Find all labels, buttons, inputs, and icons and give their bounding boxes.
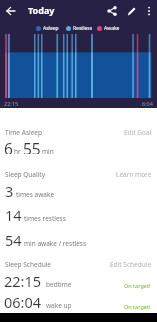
staticText: 54 [5,230,22,246]
button[interactable]: Edit Goal [124,128,152,137]
staticText: 22:15 [4,100,19,107]
staticText: times awake [16,190,55,199]
staticText: 6 [4,138,13,154]
button[interactable] [122,2,142,20]
staticText: On target! [124,282,151,289]
staticText: min [42,147,54,156]
staticText: 6:04 [142,100,153,107]
staticText: Edit Schedule [110,260,152,269]
staticText: 55 [23,138,41,154]
button[interactable]: 14 [5,205,152,223]
button[interactable] [102,2,122,20]
staticText: Today [28,4,55,16]
button[interactable] [142,2,155,20]
staticText: times restless [24,214,66,223]
button[interactable]: Edit Schedule [110,260,152,269]
staticText: Asleep [43,25,59,32]
button[interactable]: 54 [5,230,152,248]
button[interactable]: 06:04 [4,292,151,310]
staticText: Awake [104,25,120,32]
staticText: 22:15 [4,271,42,287]
staticText: hr [14,147,21,156]
staticText: 3 [5,181,14,197]
staticText: Sleep Quality [5,170,46,179]
button[interactable]: Learn more [116,170,152,179]
button[interactable] [4,4,18,18]
button[interactable]: 22:15 [4,271,151,289]
staticText: 06:04 [4,292,42,308]
staticText: Edit Goal [124,128,152,137]
staticText: Time Asleep [5,128,42,137]
staticText: 14 [5,205,22,221]
staticText: bedtime [46,280,72,289]
staticText: min awake / restless [24,239,87,248]
staticText: Sleep Schedule [5,260,51,269]
staticText: Learn more [116,170,152,179]
staticText: On target! [124,303,151,310]
staticText: Restless [73,25,93,32]
staticText: wake up [46,301,72,310]
button[interactable]: 3 [5,181,152,199]
